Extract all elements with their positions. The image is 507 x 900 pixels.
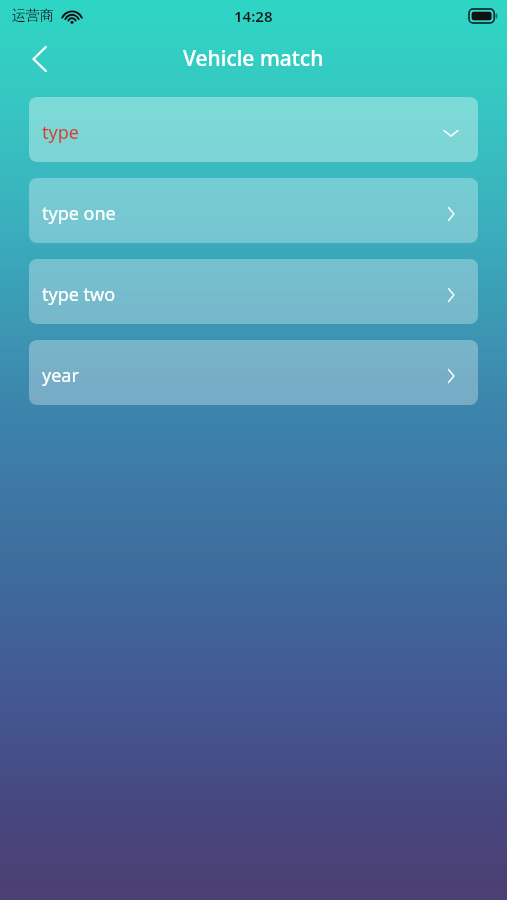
button[interactable]: Back <box>16 36 62 82</box>
staticText: Vehicle match <box>183 44 324 73</box>
button[interactable]: type one <box>29 178 478 243</box>
button[interactable]: type <box>29 97 478 162</box>
staticText: 运营商 <box>12 7 54 25</box>
staticText: year <box>42 363 79 388</box>
staticText: 14:28 <box>234 6 273 26</box>
staticText: type two <box>42 282 116 307</box>
button[interactable]: year <box>29 340 478 405</box>
button[interactable]: type two <box>29 259 478 324</box>
staticText: type <box>42 120 79 145</box>
staticText: type one <box>42 201 116 226</box>
